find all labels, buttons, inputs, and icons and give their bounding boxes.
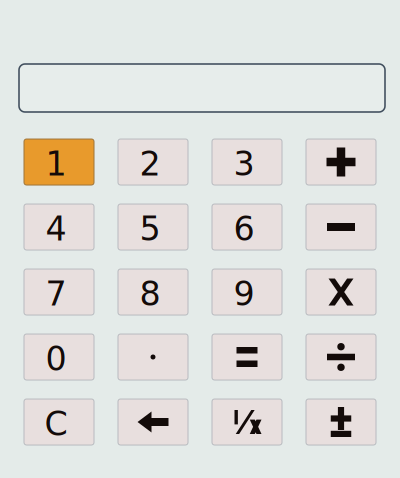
button[interactable]: Zero (24, 334, 94, 380)
button[interactable]: Minus (306, 204, 376, 250)
button[interactable]: Seven (24, 269, 94, 315)
button[interactable]: Nine (212, 269, 282, 315)
staticText: 4 (45, 210, 66, 248)
button[interactable]: Eight (118, 269, 188, 315)
staticText: 9 (233, 275, 254, 313)
button[interactable]: Four (24, 204, 94, 250)
button[interactable]: Equals (212, 334, 282, 380)
staticText: 0 (45, 340, 66, 378)
button[interactable]: Divide (306, 334, 376, 380)
button[interactable]: Clear (24, 399, 94, 445)
button[interactable]: Backspace (118, 399, 188, 445)
button[interactable]: Five (118, 204, 188, 250)
button[interactable]: Two (118, 139, 188, 185)
staticText: C (44, 405, 67, 443)
button[interactable]: Plus minus (306, 399, 376, 445)
button[interactable]: Decimal point (118, 334, 188, 380)
staticText: 5 (139, 210, 160, 248)
button[interactable]: Plus (306, 139, 376, 185)
staticText: 7 (45, 275, 66, 313)
button[interactable]: Six (212, 204, 282, 250)
staticText: 1 (45, 145, 66, 183)
staticText: 2 (139, 145, 160, 183)
staticText: 8 (139, 275, 160, 313)
button[interactable]: Reciprocal (212, 399, 282, 445)
staticText: 3 (233, 145, 254, 183)
staticText: 6 (233, 210, 254, 248)
button[interactable]: One (24, 139, 94, 185)
button[interactable]: Three (212, 139, 282, 185)
button[interactable]: Multiply (306, 269, 376, 315)
